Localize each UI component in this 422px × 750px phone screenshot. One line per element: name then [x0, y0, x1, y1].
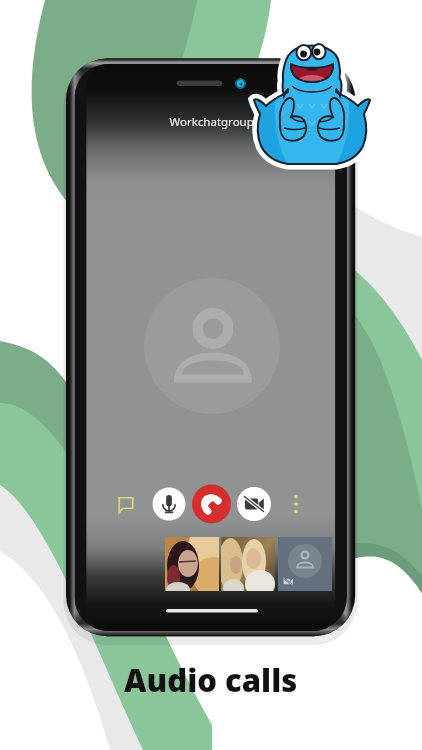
button[interactable]: End call [192, 485, 231, 524]
button[interactable]: Chat [112, 490, 140, 518]
button[interactable]: Mute microphone [152, 487, 186, 521]
button[interactable]: Turn off camera [237, 487, 271, 521]
button[interactable]: More options [286, 490, 308, 518]
